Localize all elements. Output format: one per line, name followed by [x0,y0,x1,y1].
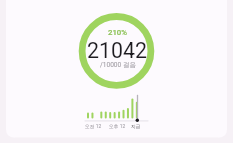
staticText: 오후 12 [109,123,126,129]
staticText: 지금 [131,123,141,129]
staticText: 오전 12 [85,123,102,129]
staticText: /10000 걸음 [100,61,137,69]
staticText: 210% [108,28,128,37]
staticText: 21042 [87,38,148,63]
